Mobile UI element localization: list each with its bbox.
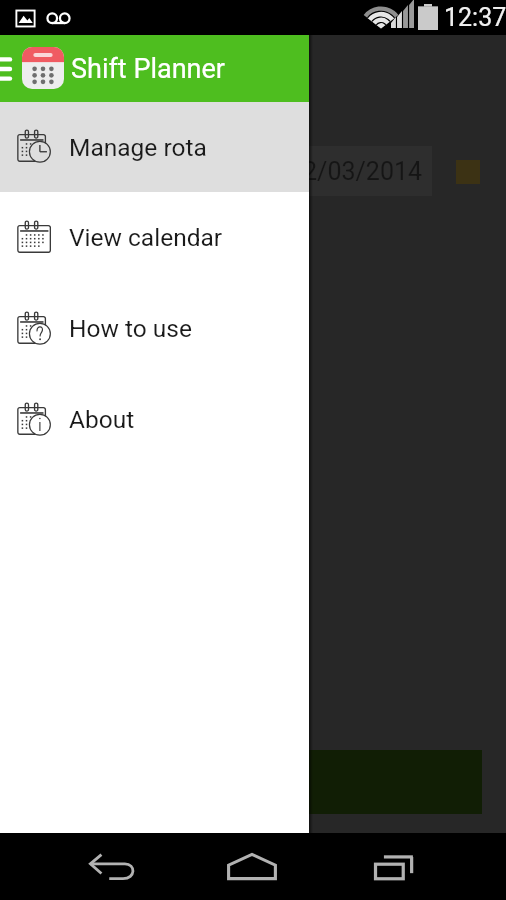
staticText: How to use	[69, 314, 192, 343]
button[interactable]: How to use	[0, 283, 309, 374]
staticText: Shift Planner	[71, 53, 225, 85]
button[interactable]: Back	[70, 833, 154, 900]
staticText: Manage rota	[69, 133, 207, 162]
staticText: 12:37	[444, 3, 506, 32]
button[interactable]: About	[0, 374, 309, 465]
staticText: View calendar	[69, 223, 223, 252]
button[interactable]: Open navigation drawer	[0, 46, 17, 91]
staticText: About	[69, 405, 135, 434]
button[interactable]: Manage rota	[0, 102, 309, 192]
staticText: 02/03/2014	[289, 157, 423, 186]
button[interactable]: Save shift	[22, 750, 482, 814]
button[interactable]: Home	[210, 833, 294, 900]
button[interactable]: Recent apps	[352, 833, 436, 900]
button[interactable]: 02/03/2014	[258, 146, 432, 196]
button[interactable]: View calendar	[0, 192, 309, 283]
